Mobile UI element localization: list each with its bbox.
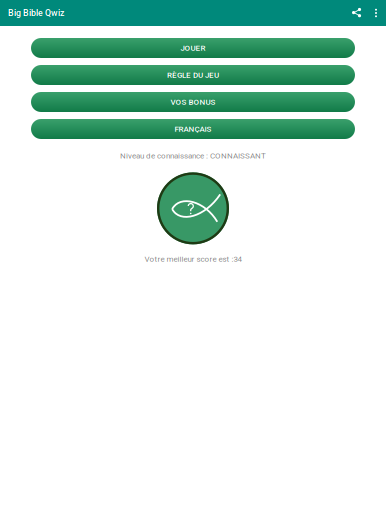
- staticText: Big Bible Qwiz: [8, 8, 64, 18]
- staticText: Niveau de connaissance : CONNAISSANT: [120, 151, 266, 160]
- staticText: JOUER: [180, 43, 205, 53]
- button[interactable]: RÈGLE DU JEU: [31, 65, 355, 85]
- staticText: VOS BONUS: [170, 97, 215, 107]
- button[interactable]: FRANÇAIS: [31, 119, 355, 139]
- button[interactable]: VOS BONUS: [31, 92, 355, 112]
- staticText: RÈGLE DU JEU: [167, 70, 219, 80]
- button[interactable]: Share: [346, 0, 368, 26]
- button[interactable]: JOUER: [31, 38, 355, 58]
- staticText: Votre meilleur score est :34: [144, 254, 241, 264]
- button[interactable]: More options: [368, 0, 384, 26]
- staticText: FRANÇAIS: [174, 124, 211, 134]
